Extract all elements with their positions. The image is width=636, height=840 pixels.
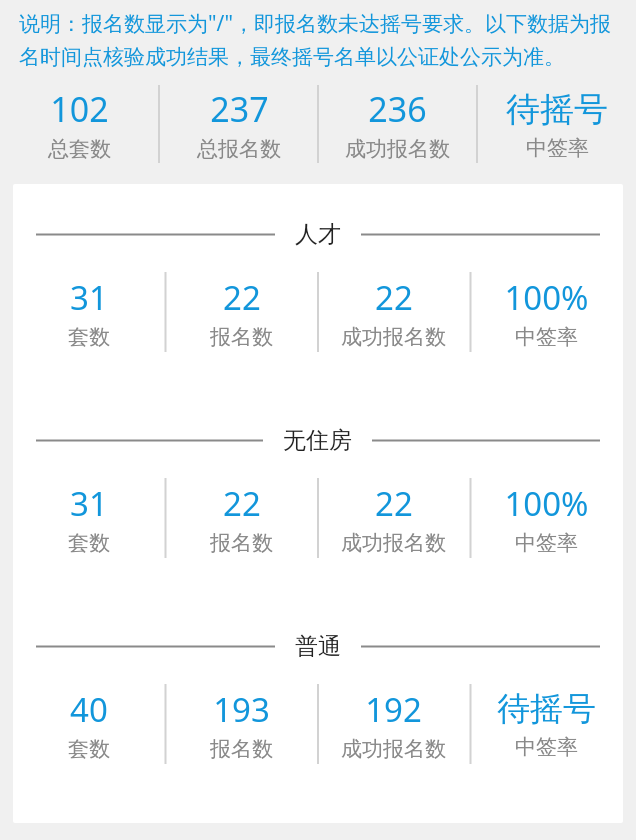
button[interactable]: 102 [48,86,111,162]
staticText: 193 [213,687,270,732]
button[interactable]: 236 [345,86,450,162]
staticText: 22 [375,275,413,320]
button[interactable]: 237 [197,86,281,162]
staticText: 无住房 [283,426,352,455]
staticText: 成功报名数 [345,136,450,162]
staticText: 待摇号 [497,688,596,730]
staticText: 中签率 [515,324,578,350]
staticText: 套数 [68,324,110,350]
staticText: 套数 [68,530,110,556]
staticText: 成功报名数 [341,530,446,556]
staticText: 40 [70,687,108,732]
staticText: 总报名数 [197,136,281,162]
staticText: 22 [223,481,261,526]
button[interactable]: 31 [68,275,110,350]
staticText: 236 [368,86,427,132]
staticText: 待摇号 [506,88,608,131]
staticText: 22 [375,481,413,526]
staticText: 192 [365,687,422,732]
staticText: 31 [70,275,108,320]
staticText: 100% [504,275,589,320]
staticText: 237 [210,86,269,132]
staticText: 总套数 [48,136,111,162]
staticText: 中签率 [515,734,578,760]
button[interactable]: 待摇号 [497,688,596,760]
staticText: 说明：报名数显示为"/"，即报名数未达摇号要求。以下数据为报名时间点核验成功结果… [19,9,620,70]
button[interactable]: 193 [210,687,273,762]
button[interactable]: 100% [504,275,589,350]
staticText: 报名数 [210,736,273,762]
button[interactable]: 31 [68,481,110,556]
staticText: 31 [70,481,108,526]
button[interactable]: 100% [504,481,589,556]
staticText: 成功报名数 [341,324,446,350]
button[interactable]: 40 [68,687,110,762]
staticText: 22 [223,275,261,320]
button[interactable]: 22 [341,275,446,350]
staticText: 成功报名数 [341,736,446,762]
staticText: 报名数 [210,324,273,350]
button[interactable]: 22 [210,481,273,556]
button[interactable]: 192 [341,687,446,762]
staticText: 套数 [68,736,110,762]
button[interactable]: 22 [341,481,446,556]
staticText: 报名数 [210,530,273,556]
staticText: 中签率 [515,530,578,556]
staticText: 人才 [295,220,341,249]
staticText: 102 [50,86,109,132]
staticText: 中签率 [526,135,589,161]
staticText: 100% [504,481,589,526]
button[interactable]: 待摇号 [506,88,608,161]
button[interactable]: 22 [210,275,273,350]
staticText: 普通 [295,632,341,661]
